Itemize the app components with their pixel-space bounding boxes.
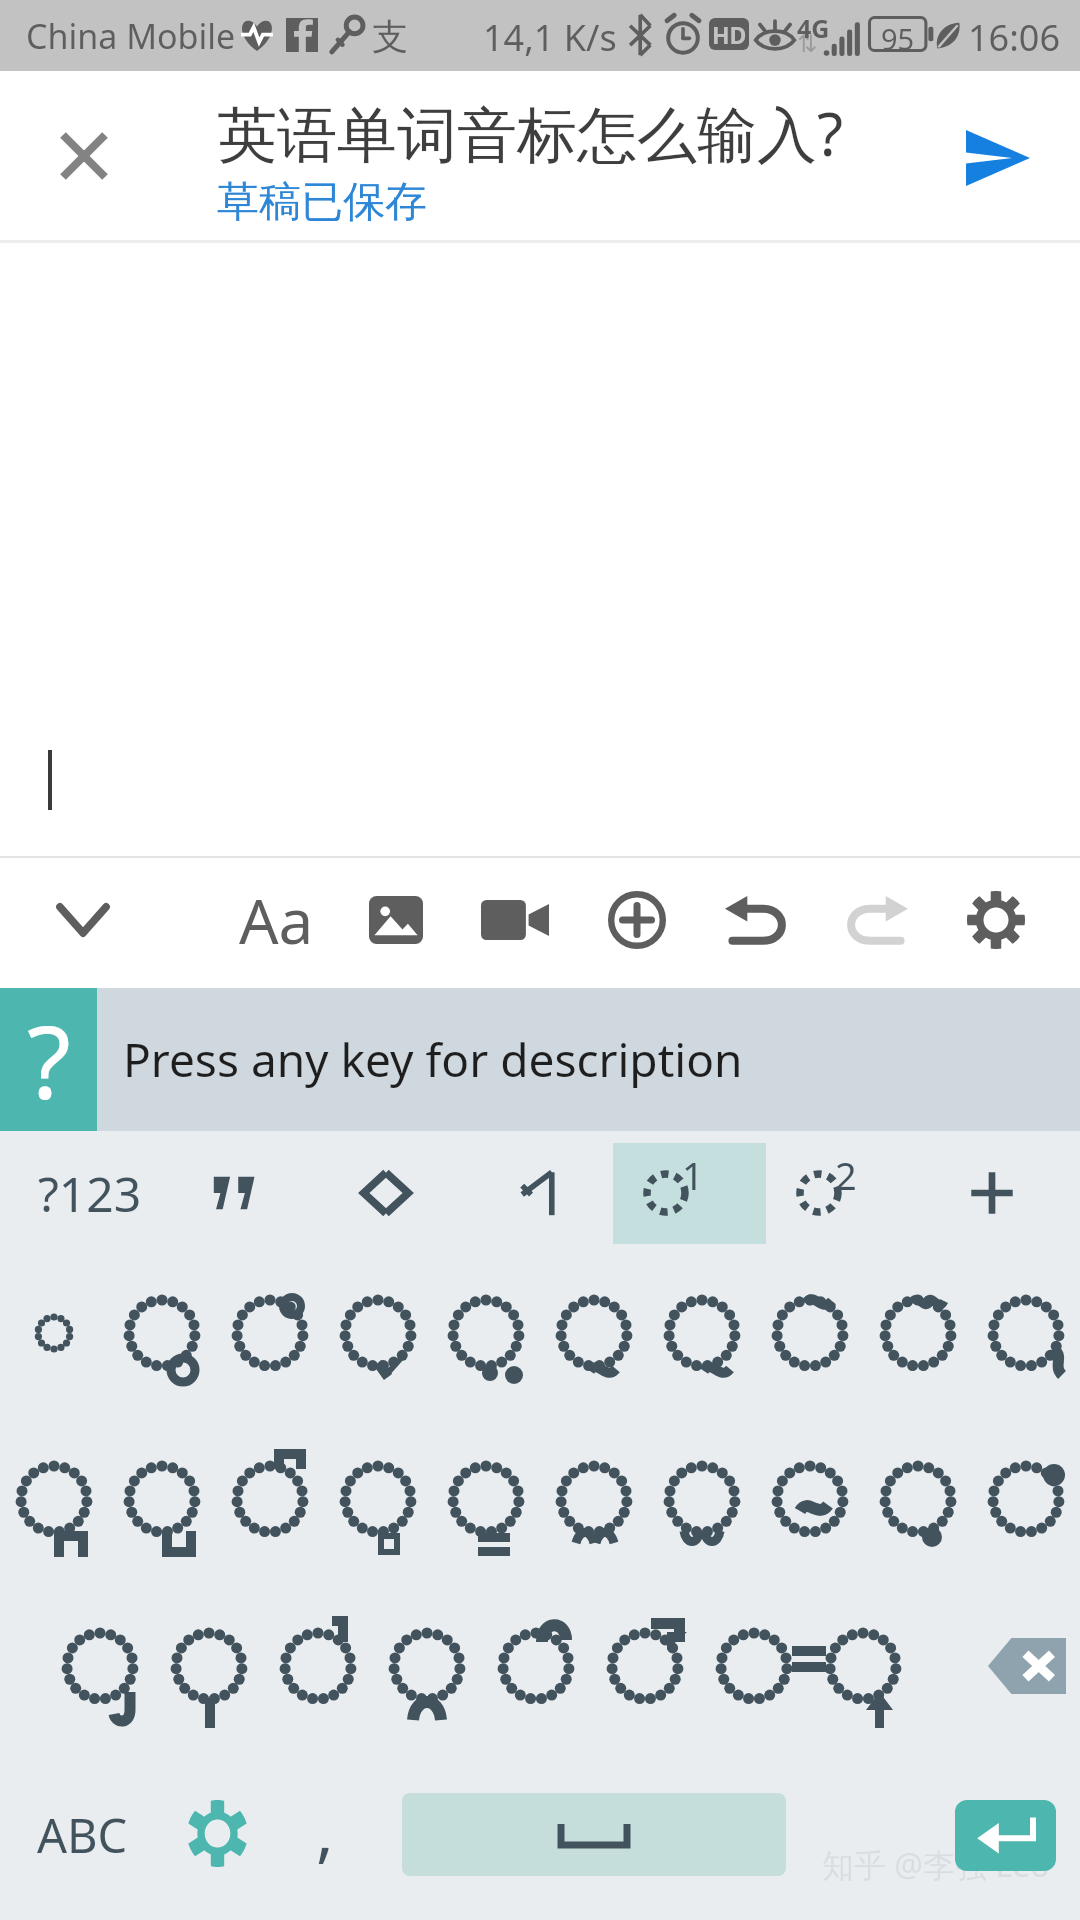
staticText: , <box>316 1785 334 1875</box>
button[interactable]: Page 2 <box>779 1141 909 1245</box>
staticText: 16:06 <box>968 13 1061 62</box>
button[interactable]: Phonetic key 3 <box>216 1253 324 1413</box>
button[interactable]: Quote <box>186 1143 286 1243</box>
staticText: 1 <box>682 1149 704 1201</box>
button[interactable]: Phonetic key 11 <box>0 1419 108 1579</box>
button[interactable]: Undo <box>702 866 810 974</box>
staticText: China Mobile <box>26 13 236 59</box>
staticText: 草稿已保存 <box>217 176 427 229</box>
button[interactable]: ?123 <box>10 1143 170 1244</box>
staticText: 支 <box>372 14 408 59</box>
button[interactable]: Phonetic key 24 <box>373 1586 481 1746</box>
button[interactable]: Phonetic key 15 <box>432 1419 540 1579</box>
button[interactable]: Settings <box>942 866 1050 974</box>
button[interactable]: Press any key for description <box>97 988 1080 1131</box>
button[interactable]: Phonetic key 26 <box>591 1586 699 1746</box>
button[interactable]: Phonetic key 4 <box>324 1253 432 1413</box>
button[interactable]: Phonetic key 17 <box>648 1419 756 1579</box>
button[interactable]: Close <box>36 108 132 204</box>
staticText: ⇅ <box>797 30 818 58</box>
button[interactable]: Phonetic key 10 <box>972 1253 1080 1413</box>
button[interactable]: Code <box>336 1143 436 1243</box>
button[interactable]: Phonetic key 18 <box>756 1419 864 1579</box>
staticText: 2 <box>835 1149 857 1201</box>
button[interactable]: Send <box>950 110 1046 206</box>
button[interactable]: Page 1 <box>626 1141 756 1245</box>
button[interactable]: Phonetic key 22 <box>155 1586 263 1746</box>
staticText: Aa <box>239 878 314 962</box>
button[interactable]: Phonetic key 16 <box>540 1419 648 1579</box>
button[interactable]: Phonetic key 14 <box>324 1419 432 1579</box>
button[interactable]: Add <box>583 866 691 974</box>
staticText: HD <box>712 19 747 50</box>
button[interactable]: Keyboard settings <box>167 1783 267 1883</box>
button[interactable]: Help <box>0 988 97 1131</box>
button[interactable]: Phonetic key 23 <box>264 1586 372 1746</box>
staticText: 英语单词音标怎么输入? <box>217 92 844 174</box>
button[interactable]: , <box>275 1780 375 1880</box>
button[interactable]: Phonetic key 9 <box>864 1253 972 1413</box>
button[interactable]: Phonetic key 1 <box>0 1253 108 1413</box>
staticText: Press any key for description <box>123 1028 743 1091</box>
staticText: 4G <box>797 11 830 45</box>
button[interactable]: More <box>942 1143 1042 1243</box>
button[interactable]: Phonetic key 5 <box>432 1253 540 1413</box>
staticText: 14,1 K/s <box>483 13 617 62</box>
button[interactable]: Backspace <box>988 1625 1066 1707</box>
button[interactable]: Phonetic key 25 <box>482 1586 590 1746</box>
button[interactable]: Phonetic key 20 <box>972 1419 1080 1579</box>
button[interactable]: Insert video <box>461 866 569 974</box>
staticText: ?123 <box>38 1161 142 1226</box>
staticText: ABC <box>37 1803 128 1867</box>
staticText: 知乎 @李强 Leo <box>822 1843 1050 1887</box>
button[interactable]: Phonetic key 28 <box>809 1586 917 1746</box>
button[interactable]: Phonetic key 21 <box>46 1586 154 1746</box>
button[interactable]: Phonetic key 13 <box>216 1419 324 1579</box>
button[interactable]: Space <box>402 1793 786 1876</box>
button[interactable]: Enter <box>955 1800 1056 1871</box>
button[interactable]: Arrow <box>487 1143 587 1243</box>
button[interactable]: Phonetic key 12 <box>108 1419 216 1579</box>
button[interactable]: Insert image <box>342 866 450 974</box>
button[interactable]: Phonetic key 19 <box>864 1419 972 1579</box>
button[interactable]: Phonetic key 7 <box>648 1253 756 1413</box>
button[interactable]: Redo <box>823 866 931 974</box>
button[interactable]: Phonetic key 2 <box>108 1253 216 1413</box>
staticText: ? <box>27 991 71 1129</box>
button[interactable]: Phonetic key 27 <box>700 1586 808 1746</box>
button[interactable]: Phonetic key 6 <box>540 1253 648 1413</box>
button[interactable]: Collapse <box>29 866 137 974</box>
button[interactable]: Phonetic key 8 <box>756 1253 864 1413</box>
button[interactable]: ABC <box>10 1785 155 1885</box>
button[interactable]: Text style <box>222 866 330 974</box>
staticText: 95 <box>881 19 915 55</box>
